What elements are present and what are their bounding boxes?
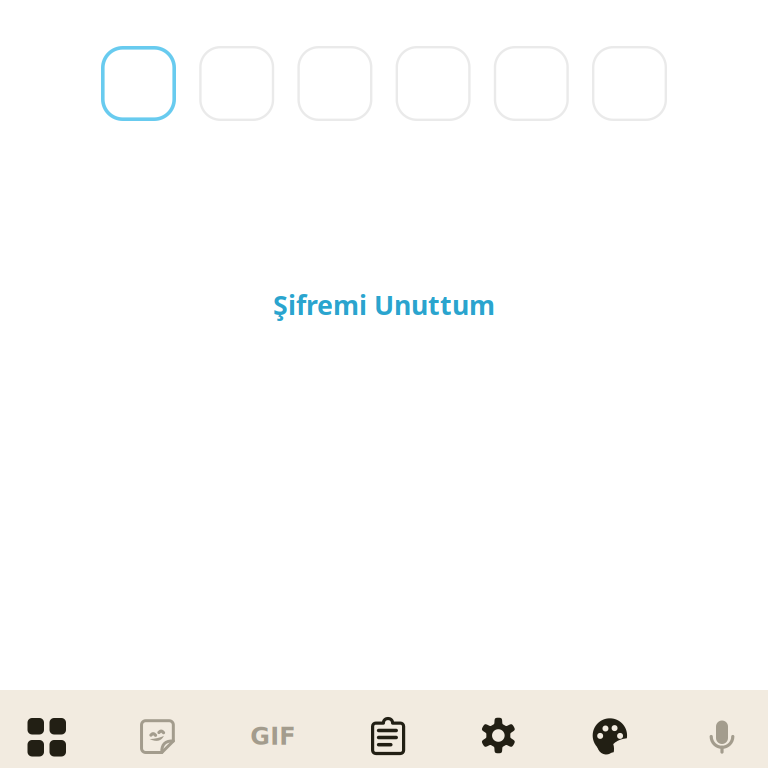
button[interactable]: Themes	[592, 717, 630, 755]
staticText: GIF	[250, 722, 295, 750]
staticText: Şifremi Unuttum	[273, 287, 495, 322]
button[interactable]: Stickers	[138, 717, 176, 755]
button[interactable]: Settings	[480, 717, 518, 755]
button[interactable]: Şifremi Unuttum	[273, 287, 495, 322]
button[interactable]: Voice input	[703, 717, 741, 755]
button[interactable]: Clipboard	[369, 717, 407, 755]
button[interactable]: Keyboard	[27, 717, 65, 755]
button[interactable]: GIF	[250, 717, 296, 755]
